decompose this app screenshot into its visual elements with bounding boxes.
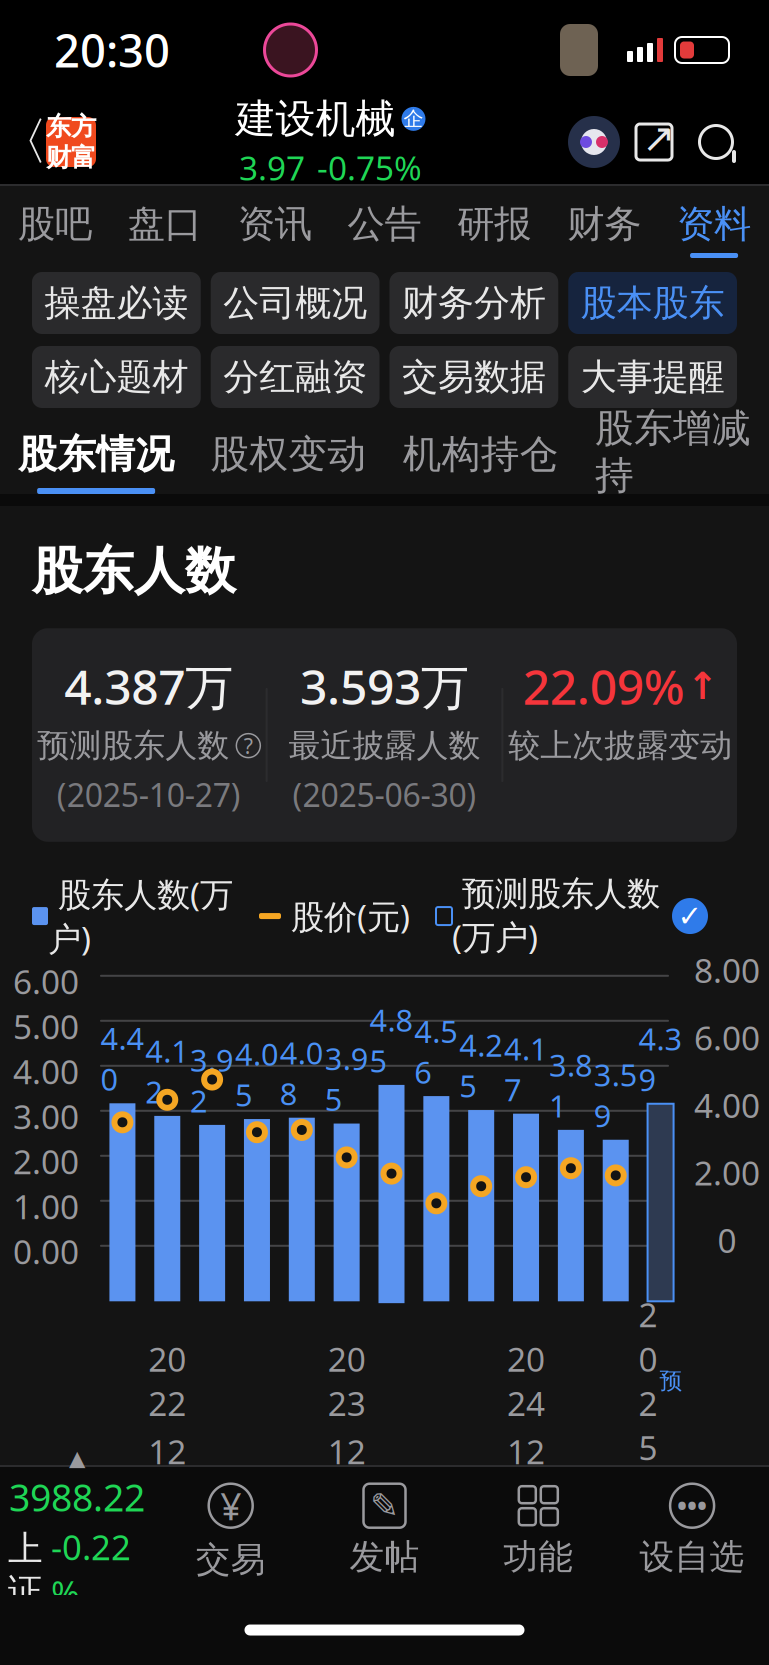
staticText: 2022 (148, 1337, 186, 1425)
staticText: 1.00 (13, 1184, 79, 1228)
staticText: ✓ (677, 899, 702, 933)
staticText: 股本股东 (581, 281, 725, 325)
staticText: ▲ (69, 1446, 85, 1470)
staticText: 4.85 (369, 999, 413, 1081)
staticText: 2.00 (694, 1150, 760, 1195)
staticText: 大事提醒 (581, 355, 725, 399)
button[interactable]: 资料 (659, 186, 769, 258)
staticText: 预测股东人数(万户) (452, 873, 660, 959)
staticText: 股东人数(万户) (48, 872, 233, 960)
staticText: 东方 (46, 111, 96, 142)
button[interactable]: 财务 (549, 186, 659, 258)
staticText: 操盘必读 (44, 281, 188, 325)
staticText: 0.00 (13, 1229, 79, 1273)
staticText: 建设机械 (235, 94, 395, 143)
staticText: 股东情况 (18, 430, 174, 478)
staticText: 交易 (196, 1538, 266, 1581)
staticText: 6.00 (13, 959, 79, 1003)
staticText: 股权变动 (210, 430, 366, 478)
staticText: 4.00 (13, 1049, 79, 1093)
button[interactable]: ▲ (0, 1446, 154, 1616)
button[interactable]: 东方财富 (46, 117, 96, 167)
button[interactable]: 股权变动 (192, 408, 384, 494)
staticText: 2024 (507, 1337, 545, 1425)
staticText: 设自选 (640, 1536, 745, 1578)
staticText: ↗ (642, 115, 676, 161)
staticText: 22.09% (523, 654, 685, 718)
button[interactable]: 机构持仓 (384, 408, 577, 494)
staticText: 盘口 (128, 201, 202, 247)
button[interactable]: 分享 (623, 111, 685, 173)
staticText: 12-31 (148, 1429, 186, 1562)
button[interactable]: 核心题材 (32, 346, 201, 408)
staticText: 4.40 (100, 1018, 144, 1099)
staticText: ? (244, 731, 253, 760)
staticText: 5.00 (13, 1004, 79, 1048)
staticText: 0 (717, 1218, 736, 1262)
button[interactable]: 切换预测股东人数 (670, 896, 710, 936)
staticText: ✎ (370, 1486, 399, 1525)
staticText (297, 1451, 306, 1495)
staticText: 3.95 (325, 1038, 369, 1119)
staticText: 4.25 (459, 1025, 503, 1106)
staticText: 3.59 (594, 1054, 638, 1136)
button[interactable]: 大事提醒 (568, 346, 737, 408)
staticText: ↑ (687, 665, 718, 707)
button[interactable]: 股东增减持 (577, 408, 769, 494)
staticText (387, 1451, 396, 1495)
staticText: 4.39 (639, 1018, 683, 1100)
staticText: 上证 (8, 1527, 43, 1612)
staticText: 公告 (347, 201, 421, 247)
button[interactable]: 财务分析 (389, 272, 558, 334)
button[interactable]: 资讯 (220, 186, 330, 258)
staticText: 资料 (677, 201, 751, 247)
staticText (432, 1451, 441, 1495)
staticText: 3.97 (239, 145, 305, 190)
button[interactable]: 公告 (330, 186, 439, 258)
staticText (611, 1451, 620, 1495)
button[interactable]: 功能 (461, 1484, 615, 1578)
staticText (477, 1451, 486, 1495)
button[interactable]: 交易数据 (389, 346, 558, 408)
button[interactable]: 搜索 (685, 111, 769, 173)
button[interactable]: 公司概况 (211, 272, 380, 334)
staticText: 财务 (567, 201, 641, 247)
staticText: 10-27 (642, 1473, 680, 1606)
staticText: 20:30 (54, 20, 170, 80)
button[interactable]: 股吧 (0, 186, 110, 258)
staticText: 企 (403, 107, 423, 131)
staticText: 12-31 (328, 1429, 366, 1562)
staticText: 4.17 (504, 1028, 548, 1110)
button[interactable]: ✎ (308, 1484, 461, 1578)
button[interactable]: 盘口 (110, 186, 220, 258)
button[interactable]: 分红融资 (211, 346, 380, 408)
button[interactable]: 研报 (439, 186, 549, 258)
button[interactable]: 股本股东 (568, 272, 737, 334)
staticText: 较上次披露变动 (508, 726, 732, 765)
button[interactable]: 股东情况 (0, 408, 192, 494)
staticText: 股价(元) (281, 894, 410, 938)
staticText: 财富 (46, 142, 96, 173)
staticText: 分红融资 (223, 355, 367, 399)
staticText: 2025 (639, 1292, 658, 1469)
button[interactable]: 操盘必读 (32, 272, 201, 334)
button[interactable]: 返回 (0, 112, 46, 172)
staticText: 核心题材 (44, 355, 188, 399)
button[interactable]: ¥ (154, 1481, 308, 1581)
button[interactable]: ••• (615, 1484, 769, 1578)
button[interactable]: AI 助手 (565, 113, 623, 171)
staticText: (2025-10-27) (57, 773, 241, 816)
staticText: 4.05 (235, 1034, 279, 1115)
staticText (252, 1451, 261, 1495)
staticText: 股东增减持 (595, 404, 751, 499)
staticText: 财务分析 (402, 281, 546, 325)
staticText: 8.00 (694, 948, 760, 992)
